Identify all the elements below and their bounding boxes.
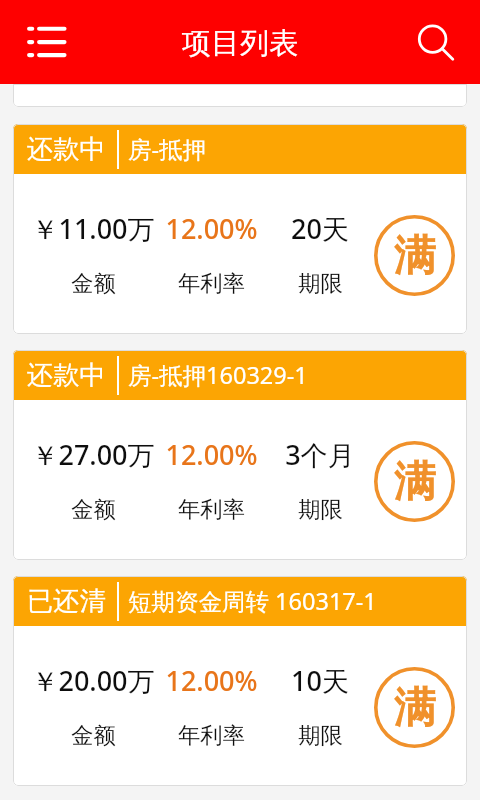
staticText: 项目列表 [182, 25, 298, 62]
staticText: 房-抵押160329-1 [128, 359, 308, 391]
button[interactable]: 还款中 [13, 350, 467, 560]
staticText: 10天 [291, 662, 349, 699]
staticText: 已还清 [27, 585, 106, 618]
staticText: 金额 [71, 722, 116, 750]
staticText: 12.00% [165, 662, 258, 699]
staticText: ￥20.00万 [31, 662, 155, 699]
staticText: 还款中 [27, 133, 106, 166]
staticText: 金额 [71, 496, 116, 524]
staticText: 20天 [291, 210, 349, 247]
staticText: 短期资金周转 160317-1 [128, 585, 377, 617]
staticText: 期限 [298, 722, 343, 750]
staticText: 12.00% [165, 436, 258, 473]
staticText: 12.00% [165, 210, 258, 247]
staticText: 年利率 [178, 722, 245, 750]
staticText: 金额 [71, 270, 116, 298]
button[interactable]: Search [396, 7, 480, 77]
staticText: ￥27.00万 [31, 436, 155, 473]
staticText: 还款中 [27, 359, 106, 392]
button[interactable]: 还款中 [13, 124, 467, 334]
staticText: 满 [394, 456, 436, 509]
staticText: 期限 [298, 496, 343, 524]
button[interactable]: 已还清 [13, 576, 467, 786]
staticText: 房-抵押 [128, 133, 207, 165]
staticText: 满 [394, 230, 436, 283]
staticText: 满 [394, 682, 436, 735]
staticText: ￥11.00万 [31, 210, 155, 247]
staticText: 3个月 [285, 436, 355, 473]
staticText: 年利率 [178, 270, 245, 298]
staticText: 年利率 [178, 496, 245, 524]
staticText: 期限 [298, 270, 343, 298]
button[interactable]: Menu [4, 7, 88, 77]
